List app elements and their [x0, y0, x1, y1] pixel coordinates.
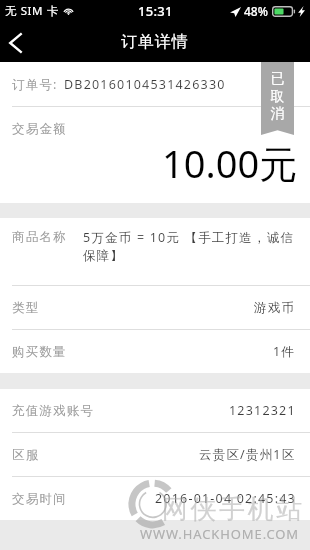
button[interactable]: Back: [0, 22, 32, 62]
staticText: 云贵区/贵州1区: [199, 446, 296, 463]
staticText: 商品名称: [12, 229, 67, 245]
staticText: 购买数量: [12, 344, 67, 360]
staticText: 订单号:: [12, 76, 58, 93]
staticText: 游戏币: [254, 300, 296, 316]
button[interactable]: 交易时间: [0, 477, 310, 520]
staticText: 10.00元: [162, 137, 298, 189]
staticText: 15:31: [138, 2, 173, 20]
staticText: 1件: [273, 343, 296, 360]
staticText: 5万金币 = 10元 【手工打造，诚信保障】: [83, 229, 297, 264]
button[interactable]: 订单号:: [0, 62, 310, 106]
staticText: 网侠手机站: [162, 493, 305, 526]
button[interactable]: 商品名称: [0, 218, 310, 285]
staticText: 12312321: [229, 402, 296, 419]
staticText: WWW.HACKHOME.COM: [140, 525, 299, 543]
staticText: 48%: [244, 3, 268, 19]
staticText: 无 SIM 卡: [5, 3, 59, 19]
button[interactable]: 类型: [0, 286, 310, 329]
staticText: 充值游戏账号: [12, 403, 95, 419]
button[interactable]: 区服: [0, 433, 310, 476]
button[interactable]: 购买数量: [0, 330, 310, 373]
staticText: 类型: [12, 300, 40, 316]
staticText: 2016-01-04 02:45:43: [155, 490, 296, 507]
staticText: 区服: [12, 447, 40, 463]
button[interactable]: 充值游戏账号: [0, 389, 310, 432]
staticText: 已 取 消: [261, 70, 294, 122]
staticText: DB20160104531426330: [64, 76, 226, 93]
staticText: 交易时间: [12, 491, 67, 507]
staticText: 交易金额: [12, 121, 67, 137]
staticText: 订单详情: [121, 32, 189, 52]
